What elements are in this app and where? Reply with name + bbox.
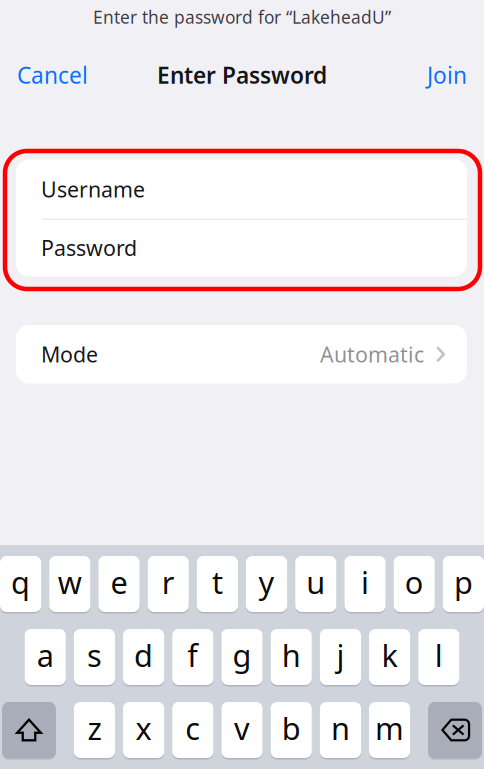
staticText: o — [405, 562, 424, 602]
staticText: f — [187, 635, 198, 675]
button[interactable]: l — [418, 629, 459, 685]
staticText: u — [306, 562, 325, 602]
button[interactable]: x — [123, 702, 164, 758]
staticText: Automatic — [320, 340, 424, 368]
button[interactable]: h — [271, 629, 312, 685]
staticText: h — [282, 635, 301, 675]
button[interactable]: c — [172, 702, 213, 758]
button[interactable]: r — [148, 556, 189, 612]
button[interactable]: e — [98, 556, 140, 612]
button[interactable]: o — [394, 556, 435, 612]
button[interactable]: n — [320, 702, 361, 758]
staticText: w — [58, 562, 82, 602]
staticText: p — [454, 562, 473, 602]
button[interactable]: Password — [16, 219, 467, 276]
staticText: Username — [41, 175, 145, 203]
staticText: j — [336, 635, 344, 675]
staticText: l — [435, 635, 443, 675]
staticText: r — [162, 562, 175, 602]
staticText: i — [361, 562, 369, 602]
button[interactable]: m — [369, 702, 410, 758]
staticText: Join — [427, 60, 467, 90]
staticText: Mode — [41, 340, 98, 368]
button[interactable]: Join — [357, 50, 484, 100]
staticText: q — [11, 562, 30, 602]
button[interactable]: Cancel — [0, 50, 127, 100]
button[interactable]: Delete — [428, 702, 482, 758]
button[interactable]: f — [172, 629, 213, 685]
staticText: x — [136, 708, 152, 748]
button[interactable]: w — [49, 556, 90, 612]
button[interactable]: Shift — [2, 702, 56, 758]
button[interactable]: t — [197, 556, 238, 612]
staticText: Cancel — [17, 60, 88, 90]
staticText: Enter Password — [157, 60, 327, 90]
staticText: m — [375, 708, 404, 748]
staticText: t — [212, 562, 223, 602]
button[interactable]: i — [344, 556, 386, 612]
staticText: e — [110, 562, 127, 602]
button[interactable]: j — [320, 629, 361, 685]
button[interactable]: u — [295, 556, 336, 612]
button[interactable]: q — [0, 556, 41, 612]
staticText: z — [87, 708, 101, 748]
staticText: y — [259, 562, 275, 602]
button[interactable]: z — [74, 702, 115, 758]
button[interactable]: k — [369, 629, 410, 685]
staticText: k — [382, 635, 398, 675]
staticText: d — [134, 635, 153, 675]
button[interactable]: a — [25, 629, 66, 685]
button[interactable]: s — [74, 629, 115, 685]
button[interactable]: Mode — [16, 325, 467, 383]
staticText: a — [37, 635, 54, 675]
staticText: Enter the password for “LakeheadU” — [93, 5, 391, 28]
button[interactable]: p — [443, 556, 484, 612]
staticText: c — [185, 708, 200, 748]
staticText: b — [282, 708, 301, 748]
button[interactable]: v — [221, 702, 263, 758]
button[interactable]: Username — [16, 159, 467, 219]
button[interactable]: b — [271, 702, 312, 758]
button[interactable]: d — [123, 629, 164, 685]
staticText: v — [234, 708, 250, 748]
staticText: n — [331, 708, 350, 748]
staticText: g — [232, 635, 251, 675]
button[interactable]: y — [246, 556, 287, 612]
staticText: s — [87, 635, 102, 675]
button[interactable]: g — [221, 629, 263, 685]
staticText: Password — [41, 233, 137, 262]
